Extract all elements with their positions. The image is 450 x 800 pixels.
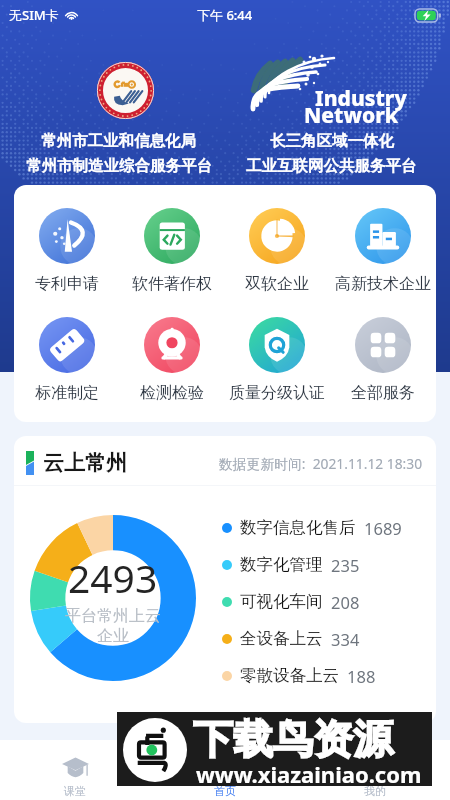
staticText: 235 <box>331 554 360 576</box>
button[interactable]: 我的 <box>300 740 450 798</box>
button[interactable]: 专利申请 <box>14 208 119 294</box>
button[interactable]: 标准制定 <box>14 317 119 403</box>
other: 课堂 <box>62 757 89 780</box>
staticText: www.xiazainiao.com <box>196 759 422 789</box>
button[interactable]: 双软企业 <box>224 208 330 294</box>
staticText: 首页 <box>214 784 236 798</box>
staticText: 数据更新时间: 2021.11.12 18:30 <box>219 454 423 473</box>
staticText: 标准制定 <box>35 383 99 403</box>
staticText: 常州市工业和信息化局 <box>41 131 196 151</box>
staticText: 无SIM卡 <box>9 6 59 24</box>
staticText: 208 <box>331 591 360 613</box>
staticText: 188 <box>347 665 376 687</box>
button[interactable]: 可视化车间 <box>222 583 360 620</box>
staticText: 软件著作权 <box>132 274 212 294</box>
staticText: 数字信息化售后 <box>240 517 356 538</box>
staticText: 零散设备上云 <box>240 665 339 686</box>
staticText: 常州市制造业综合服务平台 <box>26 156 212 176</box>
staticText: 2493 <box>68 551 158 604</box>
button[interactable]: 全部服务 <box>330 317 436 403</box>
staticText: 质量分级认证 <box>229 383 325 403</box>
staticText: 全部服务 <box>351 383 415 403</box>
staticText: 数字化管理 <box>240 554 323 575</box>
staticText: 课堂 <box>64 784 86 798</box>
other: 我的 <box>362 757 389 780</box>
staticText: 双软企业 <box>245 274 309 294</box>
staticText: 企业 <box>97 626 129 646</box>
button[interactable]: 首页 <box>150 740 300 798</box>
staticText: 全设备上云 <box>240 628 323 649</box>
button[interactable]: 课堂 <box>0 740 150 798</box>
button[interactable]: 检测检验 <box>119 317 224 403</box>
button[interactable]: 数字信息化售后 <box>222 509 402 546</box>
staticText: Industry <box>315 84 407 113</box>
button[interactable]: 全设备上云 <box>222 620 360 657</box>
staticText: 我的 <box>364 784 386 798</box>
staticText: 云上常州 <box>43 450 127 476</box>
button[interactable]: 质量分级认证 <box>224 317 330 403</box>
staticText: 下载鸟资源 <box>193 714 393 764</box>
button[interactable]: 零散设备上云 <box>222 657 376 694</box>
staticText: Network <box>304 101 399 130</box>
staticText: 工业互联网公共服务平台 <box>246 156 417 176</box>
staticText: 长三角区域一体化 <box>270 131 394 151</box>
button[interactable]: 软件著作权 <box>119 208 224 294</box>
staticText: 下午 6:44 <box>197 6 253 24</box>
staticText: 可视化车间 <box>240 591 323 612</box>
staticText: 专利申请 <box>35 274 99 294</box>
staticText: 1689 <box>364 517 402 539</box>
button[interactable]: 高新技术企业 <box>330 208 436 294</box>
staticText: 平台常州上云 <box>65 606 161 626</box>
staticText: 高新技术企业 <box>335 274 431 294</box>
staticText: 检测检验 <box>140 383 204 403</box>
button[interactable]: 数字化管理 <box>222 546 360 583</box>
other: 首页 <box>212 757 239 780</box>
staticText: 334 <box>331 628 360 650</box>
